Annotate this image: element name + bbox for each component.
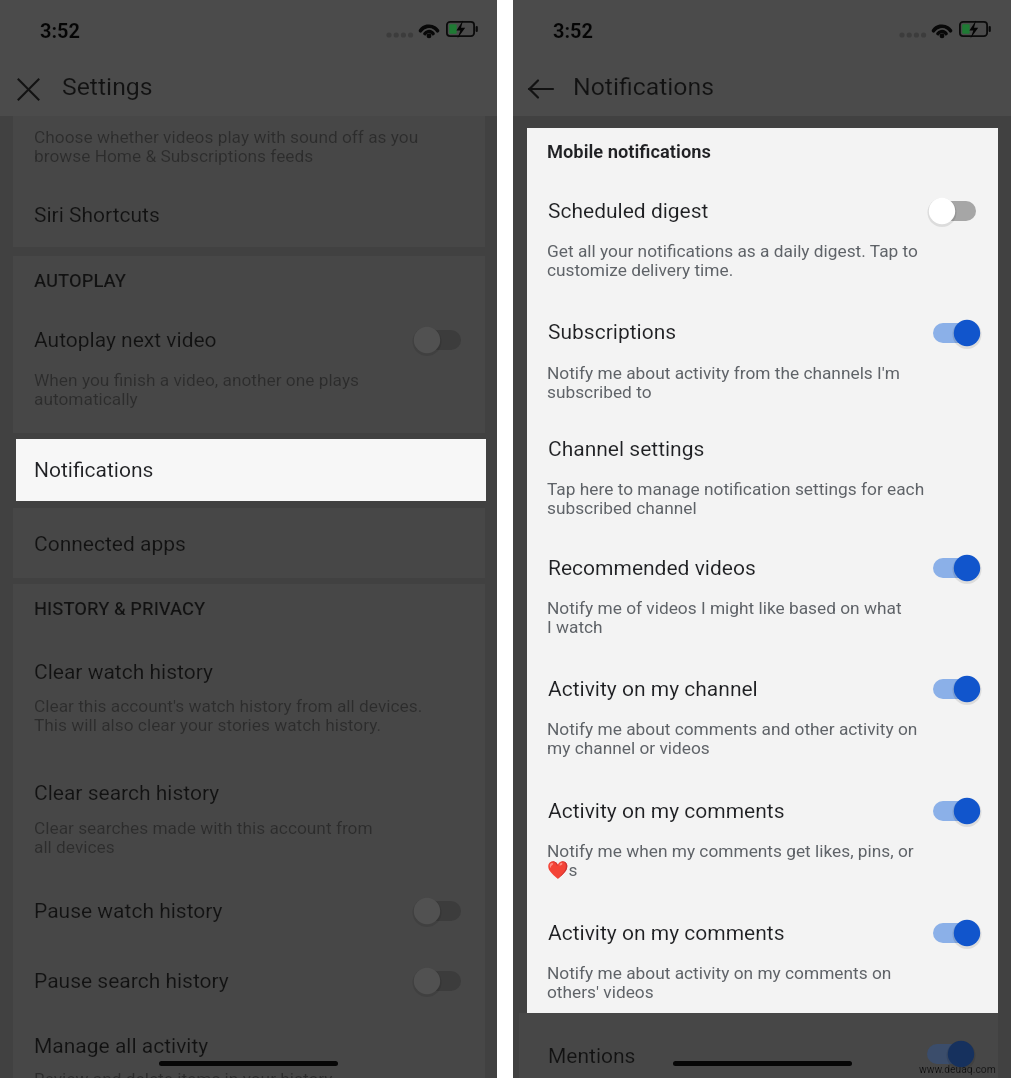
- button[interactable]: [527, 907, 998, 1007]
- button[interactable]: Toggle on: [925, 789, 985, 833]
- staticText: Clear searches made with this account fr…: [34, 818, 373, 857]
- staticText: www.deuaq.com: [919, 1063, 996, 1075]
- button[interactable]: [13, 648, 485, 740]
- staticText: HISTORY & PRIVACY: [34, 598, 206, 620]
- button[interactable]: [16, 439, 486, 501]
- staticText: 3:52: [40, 19, 81, 42]
- button[interactable]: [527, 663, 998, 763]
- staticText: Pause search history: [34, 969, 229, 994]
- button[interactable]: [527, 542, 998, 642]
- staticText: 3:52: [553, 19, 594, 42]
- staticText: AUTOPLAY: [34, 270, 126, 292]
- button[interactable]: Toggle off: [925, 189, 985, 233]
- staticText: Notify me about activity from the channe…: [547, 363, 900, 402]
- staticText: Activity on my channel: [548, 677, 758, 702]
- staticText: Notify me of videos I might like based o…: [547, 598, 902, 637]
- staticText: Clear watch history: [34, 660, 213, 685]
- staticText: Siri Shortcuts: [34, 203, 160, 228]
- button[interactable]: Toggle on: [925, 911, 985, 955]
- staticText: Notifications: [34, 458, 154, 483]
- button[interactable]: [13, 886, 485, 938]
- staticText: Tap here to manage notification settings…: [547, 479, 925, 518]
- staticText: Subscriptions: [548, 320, 677, 345]
- button[interactable]: Toggle off: [410, 959, 470, 1003]
- staticText: Settings: [62, 72, 153, 101]
- staticText: Mobile notifications: [547, 141, 711, 162]
- button[interactable]: [13, 770, 485, 862]
- staticText: Channel settings: [548, 437, 705, 462]
- button[interactable]: Back: [521, 69, 561, 109]
- staticText: Pause watch history: [34, 899, 223, 924]
- staticText: Notify me when my comments get likes, pi…: [547, 841, 914, 880]
- button[interactable]: [13, 1022, 485, 1078]
- staticText: Choose whether videos play with sound of…: [34, 127, 419, 166]
- staticText: Get all your notifications as a daily di…: [547, 241, 918, 280]
- button[interactable]: [527, 185, 998, 285]
- button[interactable]: [13, 315, 485, 415]
- staticText: Connected apps: [34, 532, 186, 557]
- button[interactable]: [527, 785, 998, 885]
- staticText: Notify me about activity on my comments …: [547, 963, 892, 1002]
- staticText: Scheduled digest: [548, 199, 709, 224]
- button[interactable]: [527, 307, 998, 407]
- staticText: Clear this account's watch history from …: [34, 696, 423, 735]
- staticText: Activity on my comments: [548, 799, 785, 824]
- button[interactable]: [13, 190, 485, 242]
- staticText: Recommended videos: [548, 556, 756, 581]
- button[interactable]: Toggle on: [919, 1032, 979, 1076]
- button[interactable]: [13, 518, 485, 570]
- staticText: Activity on my comments: [548, 921, 785, 946]
- button[interactable]: Close: [10, 71, 46, 107]
- button[interactable]: Toggle off: [410, 889, 470, 933]
- button[interactable]: [527, 423, 998, 523]
- button[interactable]: Toggle on: [925, 667, 985, 711]
- button[interactable]: Toggle off: [410, 318, 470, 362]
- button[interactable]: Toggle on: [925, 546, 985, 590]
- button[interactable]: [519, 1030, 998, 1078]
- staticText: Notifications: [573, 72, 714, 101]
- button[interactable]: [13, 956, 485, 1008]
- staticText: Clear search history: [34, 781, 220, 806]
- staticText: When you finish a video, another one pla…: [34, 370, 360, 409]
- staticText: Manage all activity: [34, 1034, 209, 1059]
- staticText: Mentions: [548, 1044, 636, 1069]
- staticText: Autoplay next video: [34, 328, 217, 353]
- staticText: Notify me about comments and other activ…: [547, 719, 918, 758]
- button[interactable]: Toggle on: [925, 311, 985, 355]
- staticText: Review and delete items in your history: [34, 1069, 333, 1078]
